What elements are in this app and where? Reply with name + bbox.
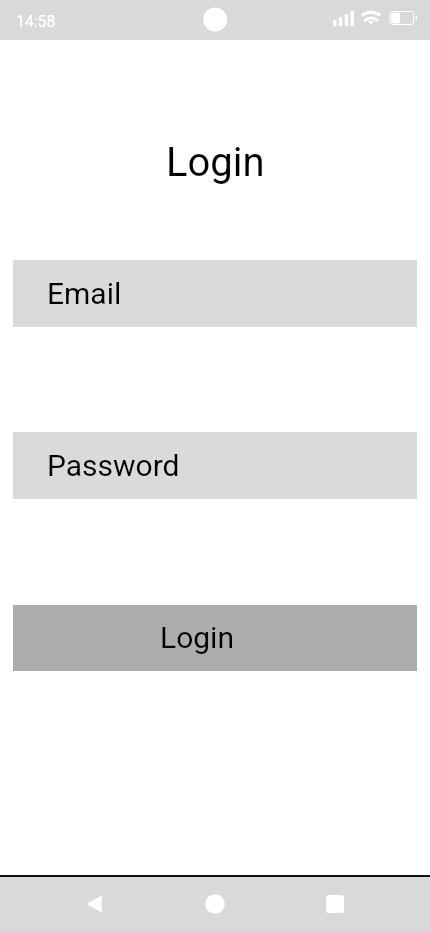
button[interactable]: Login (13, 605, 417, 671)
staticText: Login (166, 139, 265, 186)
button[interactable]: Home (191, 880, 239, 928)
button[interactable]: Recent apps (311, 880, 359, 928)
staticText: Password (47, 448, 180, 483)
staticText: Login (160, 620, 234, 655)
button[interactable]: Back (70, 880, 118, 928)
button[interactable]: Email (13, 260, 417, 327)
button[interactable]: Password (13, 432, 417, 499)
staticText: 14:58 (16, 12, 56, 31)
staticText: Email (47, 276, 122, 311)
